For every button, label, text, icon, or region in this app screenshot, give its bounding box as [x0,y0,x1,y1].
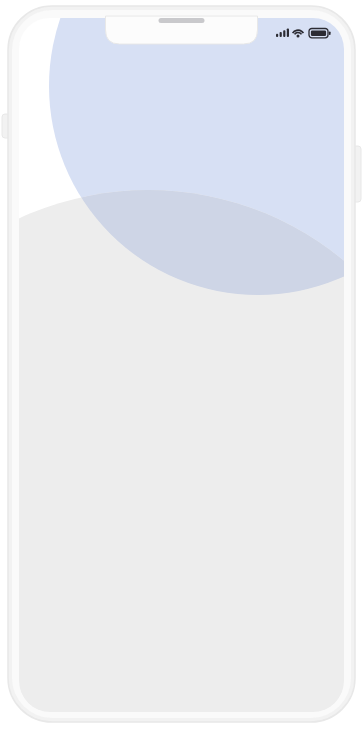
other: Phone mockup preview [0,0,363,730]
